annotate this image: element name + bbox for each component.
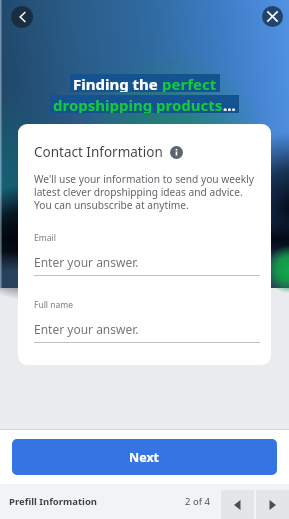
button[interactable]: Next: [12, 439, 277, 475]
staticText: Enter your answer.: [34, 321, 139, 337]
staticText: Next: [129, 449, 160, 466]
staticText: Prefill Information: [9, 495, 98, 508]
staticText: ...: [223, 95, 236, 113]
button[interactable]: Next page: [256, 490, 289, 519]
staticText: Finding the: [73, 74, 162, 92]
staticText: Full name: [34, 299, 74, 311]
staticText: Contact Information: [34, 143, 163, 161]
staticText: perfect: [162, 74, 217, 92]
staticText: Enter your answer.: [34, 254, 139, 270]
staticText: We'll use your information to send you w…: [34, 172, 260, 212]
button[interactable]: Back: [11, 6, 33, 28]
button[interactable]: Close: [262, 6, 283, 27]
button[interactable]: Information: [170, 146, 183, 159]
staticText: Email: [34, 232, 56, 244]
button[interactable]: Previous page: [221, 490, 254, 519]
staticText: dropshipping products: [53, 95, 223, 113]
staticText: 2 of 4: [185, 495, 210, 508]
